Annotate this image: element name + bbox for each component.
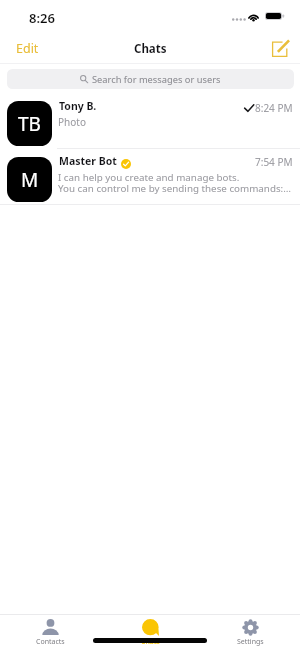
button[interactable]: Chats — [100, 614, 200, 649]
button[interactable]: M — [0, 149, 300, 205]
staticText: Chats — [134, 41, 167, 57]
staticText: 8:24 PM — [255, 101, 293, 115]
staticText: 7:54 PM — [255, 155, 293, 169]
staticText: Tony B. — [59, 99, 97, 113]
staticText: I can help you create and manage bots. — [58, 171, 240, 184]
staticText: You can control me by sending these comm… — [58, 182, 291, 195]
button[interactable]: TB — [0, 93, 300, 149]
staticText: M — [21, 167, 39, 193]
staticText: Settings — [237, 637, 264, 647]
staticText: Edit — [16, 40, 39, 57]
button[interactable]: Edit — [6, 30, 49, 62]
staticText: Contacts — [36, 637, 65, 647]
staticText: Chats — [141, 637, 160, 647]
button[interactable]: Settings — [200, 614, 300, 649]
staticText: Photo — [58, 115, 86, 129]
staticText: 8:26 — [29, 9, 55, 27]
button[interactable]: New message — [263, 30, 300, 62]
staticText: Master Bot — [59, 154, 117, 168]
button[interactable]: Search for messages or users — [7, 69, 294, 89]
staticText: Search for messages or users — [92, 73, 221, 86]
button[interactable]: Contacts — [0, 614, 100, 649]
staticText: TB — [18, 111, 41, 137]
